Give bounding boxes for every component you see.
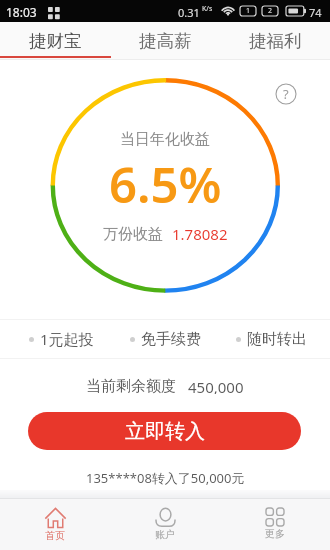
staticText: 更多 xyxy=(265,527,285,540)
staticText: 捷福利 xyxy=(249,30,302,52)
button[interactable]: 捷福利 xyxy=(220,22,330,60)
staticText: 当日年化收益 xyxy=(120,130,210,149)
staticText: 随时转出 xyxy=(247,330,307,349)
staticText: 1.78082 xyxy=(172,224,228,244)
button[interactable]: 捷高薪 xyxy=(110,22,220,60)
staticText: 135****08转入了50,000元 xyxy=(86,469,245,487)
button[interactable]: 捷财宝 xyxy=(0,22,110,60)
staticText: 74 xyxy=(309,5,322,20)
button[interactable]: 立即转入 xyxy=(28,412,301,450)
staticText: 18:03 xyxy=(6,4,37,20)
button[interactable]: 更多 xyxy=(220,499,330,550)
staticText: 首页 xyxy=(45,529,65,542)
staticText: 0.31 xyxy=(178,5,200,20)
staticText: 2 xyxy=(268,6,273,16)
staticText: 当前剩余额度 xyxy=(86,377,176,394)
staticText: K/s xyxy=(202,4,213,14)
staticText: 1元起投 xyxy=(40,329,94,349)
staticText: ? xyxy=(283,85,289,103)
button[interactable]: Help xyxy=(275,83,297,105)
staticText: 万份收益 xyxy=(103,225,163,244)
staticText: 450,000 xyxy=(188,377,244,394)
staticText: 捷财宝 xyxy=(29,30,82,52)
button[interactable]: 首页 xyxy=(0,499,110,550)
staticText: 1 xyxy=(246,6,251,16)
button[interactable]: 账户 xyxy=(110,499,220,550)
staticText: 捷高薪 xyxy=(139,30,192,52)
staticText: 6.5% xyxy=(109,151,222,218)
staticText: 账户 xyxy=(155,528,175,541)
staticText: 免手续费 xyxy=(141,330,201,349)
staticText: 立即转入 xyxy=(125,419,205,444)
